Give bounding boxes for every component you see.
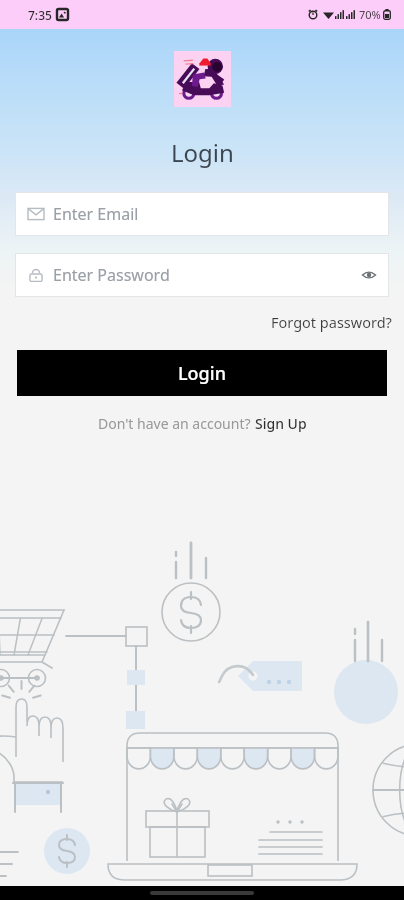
button[interactable]: Show password: [357, 263, 381, 287]
button[interactable]: Sign Up: [255, 414, 307, 433]
staticText: Login: [178, 361, 226, 386]
button[interactable]: Enter Password: [15, 253, 389, 297]
staticText: Login: [171, 136, 234, 169]
button[interactable]: Enter Email: [15, 192, 389, 236]
button[interactable]: Forgot password?: [271, 309, 404, 335]
staticText: 7:35: [28, 7, 52, 23]
staticText: Sign Up: [255, 414, 307, 433]
staticText: Enter Password: [53, 264, 170, 286]
staticText: 70%: [359, 7, 381, 22]
staticText: Don't have an account?: [98, 414, 255, 433]
staticText: Forgot password?: [271, 312, 392, 332]
staticText: Enter Email: [53, 203, 139, 225]
button[interactable]: Login: [17, 350, 387, 396]
